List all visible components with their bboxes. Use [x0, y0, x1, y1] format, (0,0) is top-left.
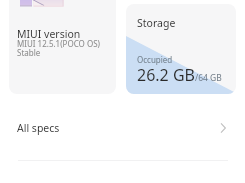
staticText: Storage: [137, 16, 176, 30]
staticText: 26.2 GB: [137, 64, 195, 86]
staticText: MIUI version: [17, 27, 81, 41]
button[interactable]: MIUI version: [9, 0, 116, 94]
staticText: /64 GB: [195, 72, 222, 84]
staticText: All specs: [17, 121, 60, 135]
staticText: Stable: [17, 47, 41, 58]
button[interactable]: Storage: [126, 4, 236, 94]
button[interactable]: All specs: [0, 109, 245, 147]
staticText: MIUI 12.5.1(POCO OS): [17, 38, 100, 49]
other: Open all specs: [215, 120, 231, 136]
staticText: Occupied: [137, 54, 173, 65]
